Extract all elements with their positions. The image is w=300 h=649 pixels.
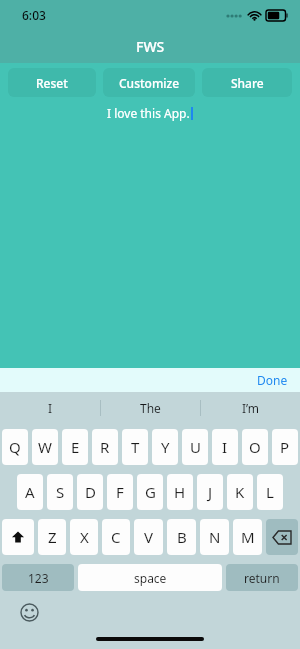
staticText: I xyxy=(48,400,53,416)
button[interactable]: Q xyxy=(2,429,28,465)
button[interactable]: Done xyxy=(245,369,300,391)
staticText: L xyxy=(266,482,274,502)
staticText: Q xyxy=(9,437,21,457)
button[interactable]: Shift xyxy=(2,519,34,555)
staticText: FWS xyxy=(136,37,165,56)
staticText: D xyxy=(85,482,96,502)
staticText: return xyxy=(244,570,280,586)
button[interactable]: L xyxy=(257,474,283,510)
button[interactable]: J xyxy=(197,474,223,510)
staticText: T xyxy=(131,437,140,457)
staticText: Y xyxy=(161,437,170,457)
button[interactable]: Customize xyxy=(103,68,195,97)
button[interactable]: U xyxy=(182,429,208,465)
button[interactable]: F xyxy=(107,474,133,510)
button[interactable]: I xyxy=(212,429,238,465)
staticText: H xyxy=(174,482,186,502)
button[interactable]: Y xyxy=(152,429,178,465)
button[interactable]: R xyxy=(92,429,118,465)
button[interactable]: H xyxy=(167,474,193,510)
button[interactable]: Emoji keyboard xyxy=(18,601,40,623)
button[interactable]: I xyxy=(0,392,100,424)
button[interactable]: N xyxy=(200,519,229,555)
staticText: Reset xyxy=(36,75,68,91)
staticText: Z xyxy=(48,527,57,547)
button[interactable]: Z xyxy=(38,519,66,555)
button[interactable]: 123 xyxy=(2,564,74,591)
staticText: R xyxy=(100,437,110,457)
staticText: space xyxy=(134,570,167,586)
staticText: X xyxy=(80,527,89,547)
button[interactable]: G xyxy=(137,474,163,510)
button[interactable]: W xyxy=(32,429,58,465)
button[interactable]: A xyxy=(17,474,43,510)
staticText: N xyxy=(209,527,221,547)
staticText: C xyxy=(111,527,121,547)
button[interactable]: S xyxy=(47,474,73,510)
staticText: I xyxy=(222,437,228,457)
button[interactable]: Backspace xyxy=(266,519,298,555)
button[interactable]: Reset xyxy=(8,68,96,97)
staticText: O xyxy=(249,437,261,457)
button[interactable]: P xyxy=(272,429,298,465)
staticText: I’m xyxy=(242,400,260,416)
staticText: V xyxy=(144,527,154,547)
staticText: S xyxy=(56,482,65,502)
button[interactable]: V xyxy=(134,519,163,555)
staticText: B xyxy=(177,527,187,547)
button[interactable]: return xyxy=(226,564,298,591)
button[interactable]: D xyxy=(77,474,103,510)
button[interactable]: Share xyxy=(202,68,292,97)
staticText: M xyxy=(241,527,255,547)
staticText: W xyxy=(38,437,52,457)
staticText: K xyxy=(235,482,245,502)
staticText: Share xyxy=(231,75,264,91)
staticText: 6:03 xyxy=(22,7,46,23)
button[interactable]: K xyxy=(227,474,253,510)
button[interactable]: M xyxy=(233,519,262,555)
staticText: P xyxy=(280,437,290,457)
button[interactable]: The xyxy=(101,392,200,424)
button[interactable]: space xyxy=(78,564,222,591)
button[interactable]: C xyxy=(102,519,130,555)
staticText: Done xyxy=(257,372,288,388)
staticText: I love this App. xyxy=(107,105,190,121)
staticText: J xyxy=(208,482,213,502)
button[interactable]: X xyxy=(70,519,98,555)
button[interactable]: E xyxy=(62,429,88,465)
button[interactable]: B xyxy=(167,519,196,555)
staticText: G xyxy=(145,482,156,502)
staticText: U xyxy=(190,437,201,457)
staticText: F xyxy=(116,482,124,502)
staticText: A xyxy=(25,482,35,502)
button[interactable]: T xyxy=(122,429,148,465)
staticText: 123 xyxy=(28,570,49,586)
button[interactable]: O xyxy=(242,429,268,465)
staticText: E xyxy=(71,437,80,457)
staticText: The xyxy=(140,400,161,416)
staticText: Customize xyxy=(119,75,180,91)
button[interactable]: I’m xyxy=(201,392,300,424)
